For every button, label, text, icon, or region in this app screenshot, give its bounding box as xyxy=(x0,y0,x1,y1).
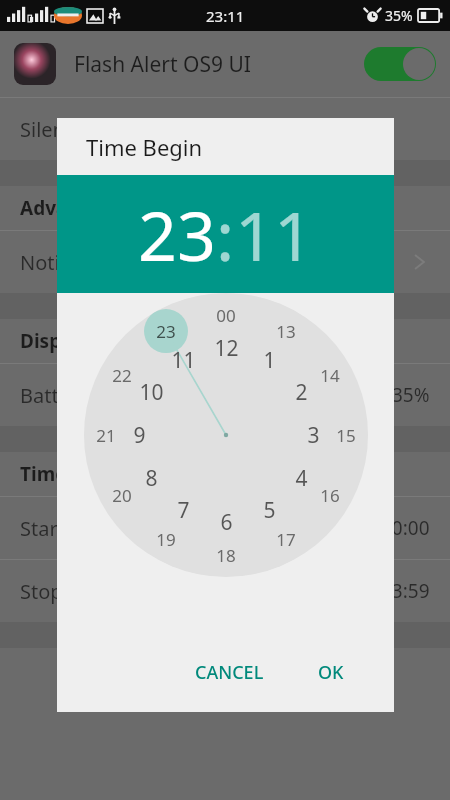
button[interactable]: 23 xyxy=(138,188,216,281)
staticText: 9 xyxy=(133,421,146,449)
button[interactable]: Notification xyxy=(0,231,450,293)
staticText: Silent Mode xyxy=(20,116,132,143)
button[interactable]: Enable Flash Alert xyxy=(364,47,436,81)
staticText: 10 xyxy=(139,378,164,406)
staticText: 19 xyxy=(156,528,176,551)
staticText: 14 xyxy=(320,364,340,387)
staticText: Notification xyxy=(20,249,130,276)
staticText: : xyxy=(216,188,235,281)
staticText: 22 xyxy=(112,364,132,387)
staticText: 00:00 xyxy=(381,515,430,541)
staticText: 11 xyxy=(171,346,196,374)
staticText: 12 xyxy=(214,334,239,362)
staticText: Timer xyxy=(20,461,76,487)
button[interactable]: OK xyxy=(308,651,354,694)
staticText: 35% xyxy=(392,382,430,408)
staticText: Flash Alert OS9 UI xyxy=(74,50,251,79)
staticText: 00 xyxy=(216,304,236,327)
staticText: CANCEL xyxy=(195,660,264,685)
staticText: 8 xyxy=(145,464,158,492)
button[interactable]: CANCEL xyxy=(185,651,274,694)
staticText: 23:59 xyxy=(381,578,430,604)
staticText: Display xyxy=(20,328,90,354)
button[interactable]: Stop Time xyxy=(0,560,450,622)
staticText: 35% xyxy=(385,6,413,25)
staticText: 23 xyxy=(138,188,216,281)
staticText: 5 xyxy=(263,496,276,524)
staticText: 17 xyxy=(276,528,296,551)
staticText: Time Begin xyxy=(86,132,203,162)
staticText: 20 xyxy=(112,484,132,507)
staticText: 11 xyxy=(235,188,313,281)
staticText: 23 xyxy=(156,320,176,343)
button[interactable]: Silent Mode xyxy=(0,98,450,160)
staticText: 2 xyxy=(295,378,308,406)
staticText: Battery Saver xyxy=(20,382,146,409)
staticText: 16 xyxy=(320,484,340,507)
staticText: Stop Time xyxy=(20,578,115,605)
button[interactable]: 11 xyxy=(235,188,313,281)
staticText: 21 xyxy=(96,424,116,447)
button[interactable]: Select hour xyxy=(84,293,368,577)
staticText: 6 xyxy=(220,508,233,536)
staticText: Advanced xyxy=(20,195,113,221)
staticText: Start Time xyxy=(20,515,117,542)
staticText: OK xyxy=(318,660,344,685)
button[interactable]: Start Time xyxy=(0,497,450,559)
staticText: 1 xyxy=(263,346,276,374)
staticText: 4 xyxy=(295,464,308,492)
staticText: 18 xyxy=(216,544,236,567)
staticText: 15 xyxy=(336,424,356,447)
staticText: 23:11 xyxy=(206,6,245,26)
staticText: 3 xyxy=(307,421,320,449)
staticText: 7 xyxy=(177,496,190,524)
staticText: 13 xyxy=(276,320,296,343)
button[interactable]: Battery Saver xyxy=(0,364,450,426)
